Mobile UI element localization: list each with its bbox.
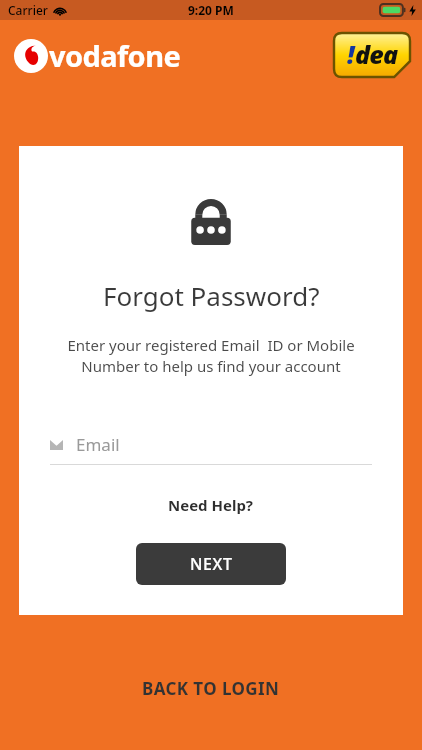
button[interactable]: Email xyxy=(50,433,372,465)
staticText: 9:20 PM xyxy=(188,2,234,18)
button[interactable]: BACK TO LOGIN xyxy=(0,667,422,710)
staticText: dea xyxy=(355,37,398,71)
staticText: Need Help? xyxy=(168,495,254,515)
button[interactable]: Need Help? xyxy=(154,491,268,519)
staticText: vodafone xyxy=(49,36,181,75)
staticText: Enter your registered Email ID or Mobile… xyxy=(31,335,391,377)
staticText: Carrier xyxy=(8,2,48,18)
staticText: ! xyxy=(347,37,355,71)
staticText: Email xyxy=(76,433,120,456)
button[interactable]: NEXT xyxy=(136,543,286,585)
button[interactable]: Idea xyxy=(334,33,410,77)
button[interactable]: Vodafone xyxy=(14,36,181,75)
staticText: BACK TO LOGIN xyxy=(142,677,280,700)
staticText: Forgot Password? xyxy=(103,278,320,313)
staticText: NEXT xyxy=(190,553,233,575)
